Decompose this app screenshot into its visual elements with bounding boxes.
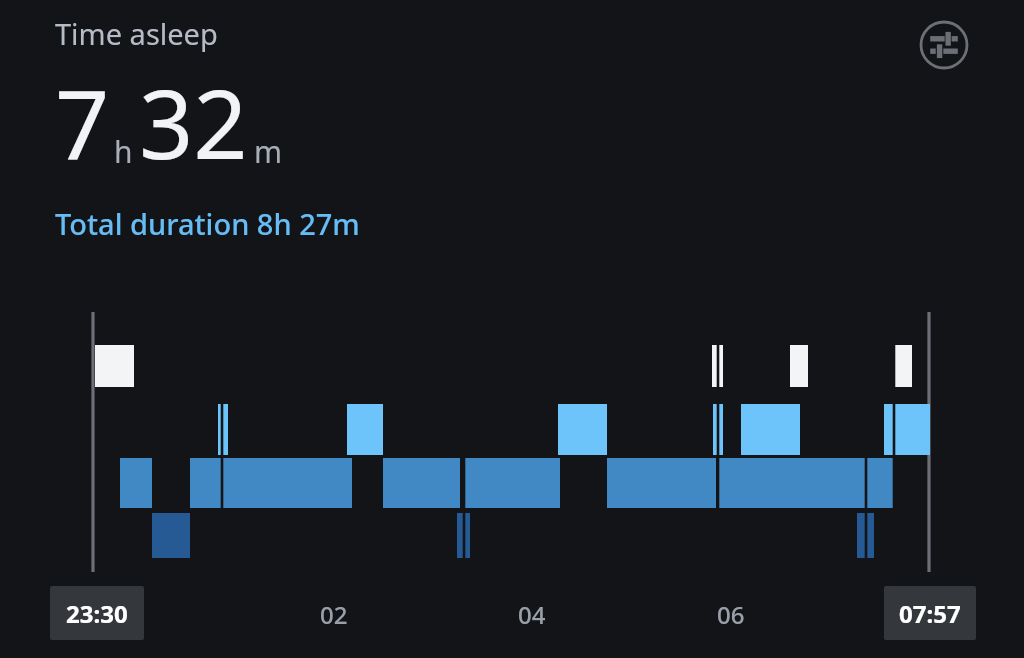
staticText: 04 <box>518 598 546 631</box>
button[interactable]: 07:57 <box>884 586 976 640</box>
staticText: 07:57 <box>899 597 961 630</box>
staticText: 02 <box>320 598 348 631</box>
staticText: 7 <box>55 57 110 186</box>
staticText: m <box>254 131 283 172</box>
staticText: h <box>114 131 133 172</box>
staticText: Time asleep <box>55 14 218 53</box>
staticText: Total duration 8h 27m <box>55 204 360 243</box>
staticText: 06 <box>717 598 745 631</box>
button[interactable]: 23:30 <box>50 586 144 640</box>
staticText: 32 <box>139 57 248 186</box>
staticText: 00 <box>113 598 141 631</box>
staticText: 23:30 <box>66 597 128 630</box>
button[interactable]: Adjust sleep settings <box>919 20 969 70</box>
